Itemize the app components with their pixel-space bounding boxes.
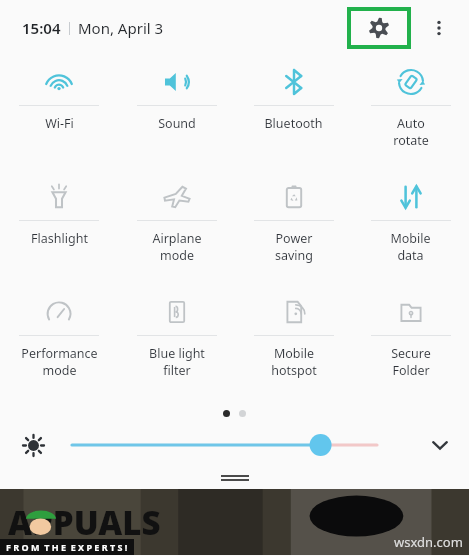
staticText: Mobile hotspot: [271, 345, 317, 378]
staticText: Auto rotate: [393, 115, 429, 148]
button[interactable]: [66, 425, 411, 465]
button[interactable]: Settings: [351, 11, 407, 45]
button[interactable]: Power saving: [235, 171, 352, 286]
button[interactable]: Wi-Fi: [0, 56, 118, 171]
button[interactable]: Sound: [118, 56, 235, 171]
staticText: wsxdn.com: [394, 533, 463, 551]
staticText: Secure Folder: [391, 345, 431, 378]
button[interactable]: Mobile hotspot: [235, 286, 352, 401]
button[interactable]: Mobile data: [352, 171, 469, 286]
button[interactable]: More options: [427, 16, 451, 40]
button[interactable]: Flashlight: [0, 171, 118, 286]
staticText: Bluetooth: [264, 115, 323, 132]
staticText: Flashlight: [31, 230, 88, 247]
staticText: Performance mode: [21, 345, 98, 378]
staticText: Blue light filter: [149, 345, 205, 378]
staticText: Airplane mode: [152, 230, 202, 263]
staticText: APPUALS: [8, 500, 161, 545]
staticText: 15:04: [22, 18, 61, 38]
staticText: Wi-Fi: [45, 115, 74, 132]
button[interactable]: Auto rotate: [352, 56, 469, 171]
button[interactable]: Secure Folder: [352, 286, 469, 401]
staticText: F R O M T H E E X P E R T S !: [6, 541, 128, 553]
staticText: Sound: [158, 115, 196, 132]
staticText: Power saving: [275, 230, 313, 263]
button[interactable]: Airplane mode: [118, 171, 235, 286]
button[interactable]: Brightness: [0, 425, 66, 465]
button[interactable]: Performance mode: [0, 286, 118, 401]
staticText: Mobile data: [390, 230, 431, 263]
button[interactable]: Expand: [411, 425, 469, 465]
staticText: Mon, April 3: [78, 18, 164, 38]
button[interactable]: Blue light filter: [118, 286, 235, 401]
button[interactable]: Bluetooth: [235, 56, 352, 171]
